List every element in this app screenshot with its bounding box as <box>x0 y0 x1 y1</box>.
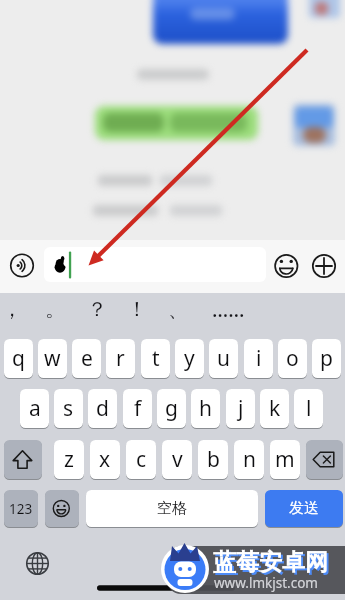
button[interactable]: l <box>294 389 323 428</box>
staticText: 发送 <box>289 499 319 518</box>
button[interactable]: b <box>198 440 228 479</box>
button[interactable]: i <box>244 339 273 378</box>
button[interactable]: g <box>157 389 186 428</box>
staticText: www.lmkjst.com <box>214 574 318 592</box>
button[interactable]: ！ <box>126 296 148 322</box>
button[interactable]: u <box>209 339 238 378</box>
staticText: ， <box>2 297 22 322</box>
button[interactable]: ？ <box>86 296 108 322</box>
staticText: …… <box>212 296 245 322</box>
staticText: w <box>44 344 61 373</box>
staticText: d <box>96 394 109 423</box>
staticText: 蓝莓安卓网 <box>215 550 330 579</box>
button[interactable]: o <box>278 339 307 378</box>
button[interactable] <box>4 440 42 479</box>
staticText: a <box>29 394 41 423</box>
staticText: f <box>134 394 142 423</box>
button[interactable]: f <box>123 389 152 428</box>
button[interactable]: c <box>126 440 156 479</box>
button[interactable]: p <box>312 339 341 378</box>
staticText: z <box>64 445 74 474</box>
button[interactable]: 。 <box>44 296 66 322</box>
staticText: 123 <box>9 500 33 518</box>
staticText: s <box>63 394 74 423</box>
staticText: p <box>320 344 333 373</box>
button[interactable] <box>44 247 266 282</box>
button[interactable]: e <box>72 339 101 378</box>
staticText: q <box>12 344 25 373</box>
button[interactable]: ， <box>1 296 23 322</box>
staticText: 蓝莓安卓网 <box>213 548 328 577</box>
button[interactable]: x <box>90 440 120 479</box>
staticText: j <box>238 394 244 423</box>
staticText: g <box>165 394 178 423</box>
button[interactable]: a <box>20 389 49 428</box>
staticText: b <box>207 445 220 474</box>
button[interactable]: y <box>175 339 204 378</box>
staticText: t <box>152 344 160 373</box>
button[interactable]: j <box>226 389 255 428</box>
button[interactable]: 空格 <box>86 490 258 527</box>
button[interactable]: q <box>4 339 33 378</box>
button[interactable]: 发送 <box>265 490 343 527</box>
button[interactable]: n <box>234 440 264 479</box>
staticText: x <box>99 445 111 474</box>
button[interactable]: k <box>260 389 289 428</box>
staticText: m <box>275 445 295 474</box>
staticText: u <box>217 344 230 373</box>
button[interactable]: s <box>54 389 83 428</box>
button[interactable]: 、 <box>167 296 189 322</box>
staticText: y <box>184 344 195 373</box>
button[interactable] <box>45 490 79 527</box>
button[interactable]: v <box>162 440 192 479</box>
button[interactable]: w <box>38 339 67 378</box>
staticText: 空格 <box>157 499 187 518</box>
staticText: e <box>81 344 93 373</box>
staticText: r <box>116 344 125 373</box>
staticText: o <box>286 344 299 373</box>
button[interactable]: h <box>191 389 220 428</box>
button[interactable] <box>312 254 336 278</box>
staticText: k <box>269 394 281 423</box>
staticText: 、 <box>168 297 188 322</box>
staticText: ？ <box>87 297 107 322</box>
button[interactable]: z <box>54 440 84 479</box>
button[interactable]: t <box>141 339 170 378</box>
staticText: h <box>199 394 212 423</box>
button[interactable] <box>306 440 343 479</box>
button[interactable] <box>9 253 35 279</box>
staticText: 。 <box>45 297 65 322</box>
staticText: c <box>136 445 147 474</box>
button[interactable]: m <box>270 440 300 479</box>
button[interactable]: 123 <box>4 490 38 527</box>
staticText: l <box>306 394 312 423</box>
staticText: n <box>243 445 256 474</box>
button[interactable]: d <box>88 389 117 428</box>
button[interactable]: r <box>106 339 135 378</box>
button[interactable] <box>275 254 299 278</box>
button[interactable]: …… <box>206 296 250 322</box>
staticText: ！ <box>127 297 147 322</box>
staticText: v <box>172 445 183 474</box>
staticText: i <box>256 344 262 373</box>
button[interactable] <box>26 552 49 575</box>
